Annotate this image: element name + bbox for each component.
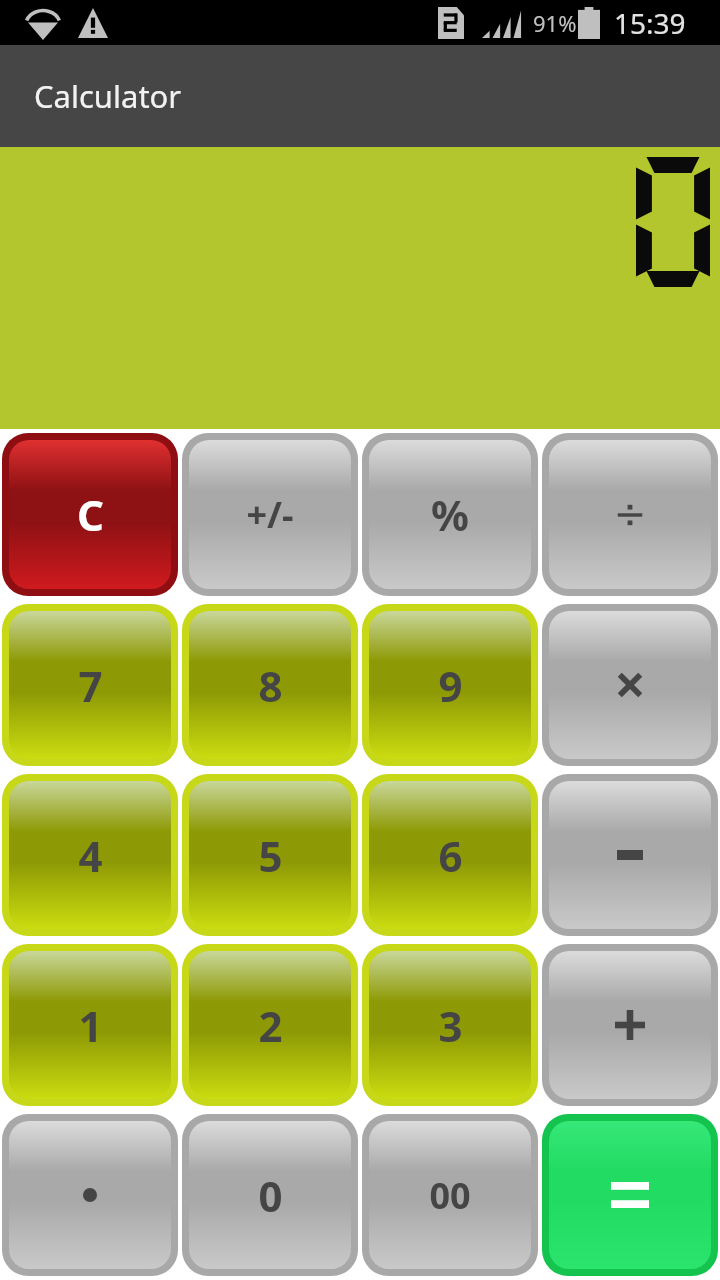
staticText: 6: [438, 827, 463, 884]
button[interactable]: Decimal point: [9, 1121, 171, 1269]
button[interactable]: Equals: [549, 1121, 711, 1269]
staticText: %: [431, 486, 469, 543]
button[interactable]: C: [9, 440, 171, 589]
button[interactable]: 8: [189, 611, 351, 759]
button[interactable]: Multiply: [549, 611, 711, 759]
button[interactable]: 9: [369, 611, 531, 759]
staticText: 9: [438, 657, 463, 714]
button[interactable]: 6: [369, 781, 531, 929]
button[interactable]: 7: [9, 611, 171, 759]
staticText: 2: [258, 997, 283, 1054]
staticText: Calculator: [34, 75, 182, 117]
button[interactable]: 3: [369, 951, 531, 1099]
staticText: 91%: [533, 8, 577, 38]
button[interactable]: Divide: [549, 440, 711, 589]
staticText: 3: [438, 997, 463, 1054]
button[interactable]: 2: [189, 951, 351, 1099]
button[interactable]: 4: [9, 781, 171, 929]
staticText: +/-: [246, 490, 294, 539]
button[interactable]: 5: [189, 781, 351, 929]
staticText: C: [77, 486, 104, 543]
staticText: 0: [258, 1167, 283, 1224]
button[interactable]: 1: [9, 951, 171, 1099]
staticText: 15:39: [614, 4, 686, 42]
button[interactable]: Minus: [549, 781, 711, 929]
staticText: 4: [78, 827, 103, 884]
staticText: 7: [78, 657, 103, 714]
staticText: 00: [429, 1171, 471, 1220]
staticText: 8: [258, 657, 283, 714]
button[interactable]: 0: [189, 1121, 351, 1269]
button[interactable]: Plus: [549, 951, 711, 1099]
staticText: 1: [78, 997, 103, 1054]
staticText: 5: [258, 827, 283, 884]
button[interactable]: +/-: [189, 440, 351, 589]
button[interactable]: 00: [369, 1121, 531, 1269]
button[interactable]: %: [369, 440, 531, 589]
